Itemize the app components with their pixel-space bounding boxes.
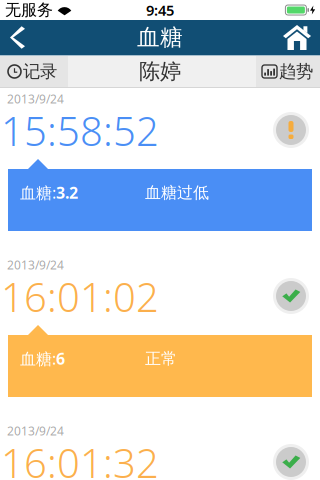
- staticText: 16:01:32: [1, 436, 159, 480]
- staticText: 15:58:52: [1, 104, 159, 157]
- staticText: 趋势: [279, 61, 313, 82]
- staticText: 记录: [23, 61, 57, 82]
- staticText: 16:01:02: [1, 270, 159, 323]
- staticText: 无服务: [5, 0, 53, 20]
- staticText: 正常: [145, 349, 177, 368]
- button[interactable]: 正常: [273, 444, 309, 480]
- staticText: 血糖:: [20, 348, 56, 369]
- staticText: 陈婷: [139, 58, 181, 85]
- button[interactable]: 警告: [273, 112, 309, 148]
- button[interactable]: 趋势: [262, 55, 320, 88]
- button[interactable]: 血糖:: [8, 325, 312, 397]
- button[interactable]: 正常: [273, 278, 309, 314]
- button[interactable]: 返回: [0, 20, 39, 55]
- staticText: 血糖:: [20, 182, 56, 203]
- staticText: 9:45: [146, 0, 174, 20]
- button[interactable]: 血糖:: [8, 159, 312, 231]
- staticText: 6: [56, 348, 65, 369]
- staticText: 2013/9/24: [7, 257, 64, 273]
- staticText: 血糖: [137, 24, 183, 51]
- button[interactable]: 主页: [273, 20, 320, 55]
- staticText: 3.2: [56, 182, 78, 203]
- button[interactable]: 记录: [0, 55, 57, 88]
- staticText: 2013/9/24: [7, 91, 64, 107]
- staticText: 2013/9/24: [7, 423, 64, 439]
- staticText: 血糖过低: [145, 183, 209, 202]
